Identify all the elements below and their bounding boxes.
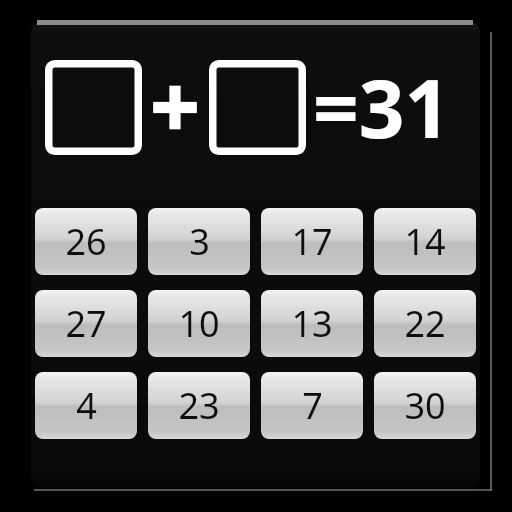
button[interactable]: 13 xyxy=(261,290,363,357)
button[interactable]: 26 xyxy=(35,208,137,275)
button[interactable]: 3 xyxy=(148,208,250,275)
staticText: =31 xyxy=(313,52,451,161)
button[interactable]: 22 xyxy=(374,290,476,357)
other: plus xyxy=(152,85,198,130)
button[interactable]: 27 xyxy=(35,290,137,357)
button[interactable]: 4 xyxy=(35,372,137,439)
staticText: 13 xyxy=(291,299,333,348)
button[interactable]: 14 xyxy=(374,208,476,275)
button[interactable]: Second addend, empty xyxy=(209,60,306,155)
button[interactable]: 23 xyxy=(148,372,250,439)
button[interactable]: 10 xyxy=(148,290,250,357)
button[interactable]: 30 xyxy=(374,372,476,439)
button[interactable]: First addend, empty xyxy=(45,60,142,155)
staticText: 10 xyxy=(178,299,220,348)
staticText: 17 xyxy=(291,217,333,266)
staticText: 27 xyxy=(65,299,107,348)
staticText: 26 xyxy=(65,217,107,266)
button[interactable]: 7 xyxy=(261,372,363,439)
staticText: 3 xyxy=(189,217,210,266)
staticText: 23 xyxy=(178,381,220,430)
staticText: 14 xyxy=(404,217,446,266)
staticText: 7 xyxy=(302,381,323,430)
button[interactable]: 17 xyxy=(261,208,363,275)
staticText: 22 xyxy=(404,299,446,348)
staticText: 30 xyxy=(404,381,446,430)
staticText: 4 xyxy=(76,381,97,430)
